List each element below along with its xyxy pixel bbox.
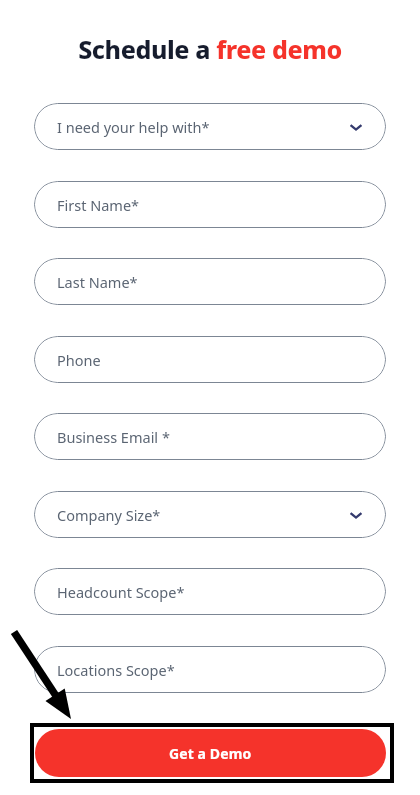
staticText: Company Size*: [57, 505, 161, 525]
button[interactable]: First Name*: [34, 181, 386, 228]
staticText: Phone: [57, 350, 101, 370]
button[interactable]: Last Name*: [34, 258, 386, 305]
other: Open Company Size* options: [348, 507, 364, 523]
other: Open I need your help with* options: [348, 119, 364, 135]
staticText: First Name*: [57, 195, 140, 215]
staticText: Locations Scope*: [57, 660, 175, 680]
button[interactable]: Company Size*: [34, 491, 386, 538]
staticText: Headcount Scope*: [57, 582, 185, 602]
button[interactable]: Business Email *: [34, 413, 386, 460]
button[interactable]: Locations Scope*: [34, 646, 386, 693]
button[interactable]: Get a Demo: [35, 729, 386, 777]
button[interactable]: Headcount Scope*: [34, 568, 386, 615]
staticText: I need your help with*: [57, 117, 210, 137]
staticText: Business Email *: [57, 427, 170, 447]
staticText: Schedule a free demo: [78, 32, 342, 66]
staticText: Get a Demo: [169, 744, 252, 763]
staticText: Last Name*: [57, 272, 138, 292]
button[interactable]: I need your help with*: [34, 103, 386, 150]
button[interactable]: Phone: [34, 336, 386, 383]
